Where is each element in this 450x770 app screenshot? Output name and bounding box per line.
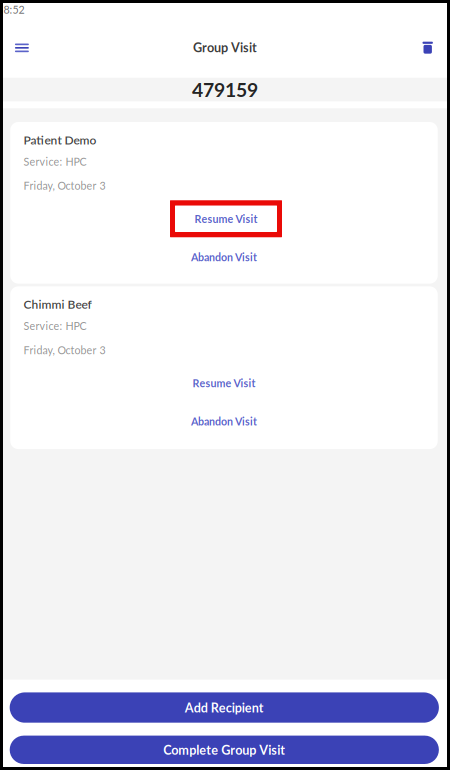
staticText: Service: HPC	[23, 319, 86, 332]
staticText: Friday, October 3	[23, 179, 105, 192]
staticText: Resume Visit	[194, 212, 257, 225]
staticText: Add Recipient	[185, 700, 264, 715]
staticText: Resume Visit	[192, 212, 255, 225]
button[interactable]: Resume Visit	[168, 200, 280, 237]
staticText: Abandon Visit	[191, 415, 257, 428]
button[interactable]: Resume Visit	[168, 365, 280, 401]
staticText: Complete Group Visit	[163, 742, 285, 757]
staticText: 8:52	[3, 3, 24, 16]
button[interactable]: Abandon Visit	[159, 243, 289, 271]
staticText: Abandon Visit	[191, 251, 257, 263]
staticText: Group Visit	[193, 40, 257, 55]
button[interactable]: Delete group visit	[412, 36, 440, 64]
staticText: Resume Visit	[192, 377, 255, 389]
button[interactable]: Menu	[8, 36, 36, 64]
staticText: Chimmi Beef	[23, 297, 91, 311]
staticText: 479159	[192, 78, 258, 101]
staticText: Service: HPC	[23, 155, 86, 168]
button[interactable]: Complete Group Visit	[10, 736, 439, 764]
staticText: Friday, October 3	[23, 344, 105, 356]
staticText: Patient Demo	[23, 133, 96, 147]
button[interactable]: Abandon Visit	[159, 407, 289, 435]
button[interactable]: Add Recipient	[10, 692, 439, 723]
